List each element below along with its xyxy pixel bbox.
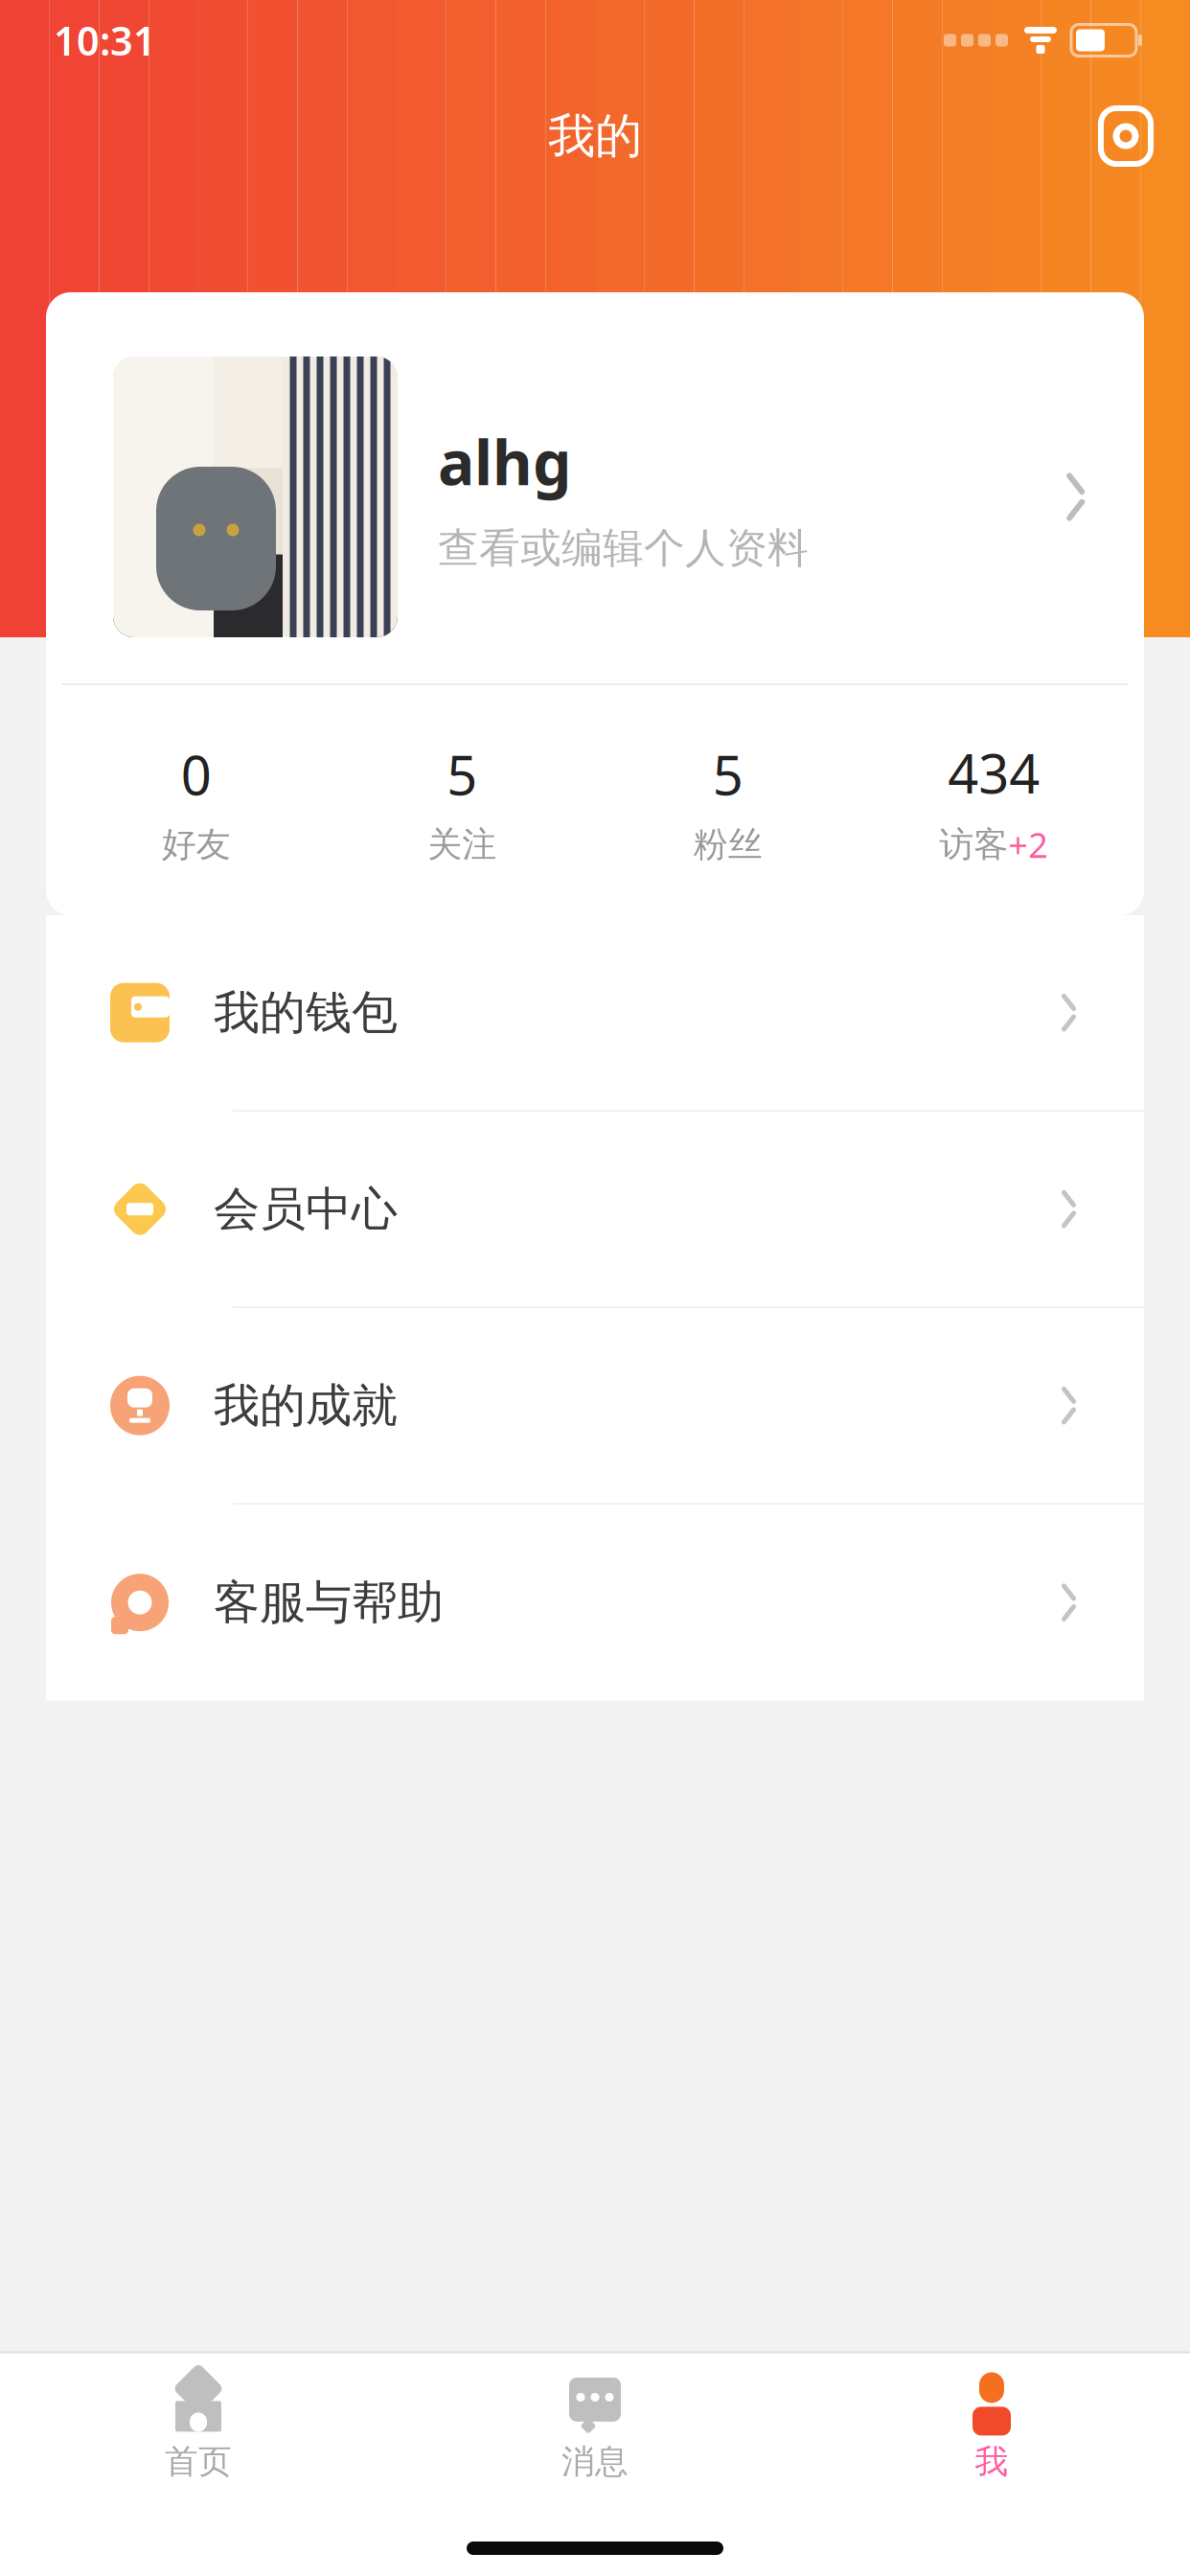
staticText: 首页 <box>165 2441 232 2482</box>
staticText: 消息 <box>561 2441 629 2482</box>
staticText: 10:31 <box>54 14 156 67</box>
button[interactable]: 消息 <box>397 2359 793 2499</box>
staticText: 5 <box>713 739 743 810</box>
button[interactable]: 我的成就 <box>46 1308 1144 1505</box>
staticText: 会员中心 <box>214 1181 398 1237</box>
button[interactable]: alhg <box>46 292 1144 683</box>
staticText: 我的 <box>548 107 642 165</box>
staticText: 查看或编辑个人资料 <box>438 523 809 573</box>
staticText: alhg <box>438 421 571 502</box>
staticText: 关注 <box>428 823 497 866</box>
button[interactable]: 5 <box>595 729 861 875</box>
button[interactable]: 会员中心 <box>46 1112 1144 1308</box>
staticText: 访客 <box>939 823 1008 866</box>
staticText: 客服与帮助 <box>214 1574 444 1631</box>
button[interactable]: 我的钱包 <box>46 915 1144 1112</box>
staticText: 粉丝 <box>693 823 762 866</box>
button[interactable]: 434 <box>861 727 1127 877</box>
button[interactable]: 0 <box>63 729 329 875</box>
button[interactable]: 首页 <box>0 2359 397 2499</box>
button[interactable]: 设置 <box>1083 93 1169 179</box>
staticText: 我的成就 <box>214 1377 398 1434</box>
button[interactable]: 我 <box>793 2359 1190 2499</box>
staticText: 434 <box>948 737 1040 808</box>
button[interactable]: 客服与帮助 <box>46 1505 1144 1700</box>
staticText: 我 <box>975 2441 1008 2482</box>
staticText: 好友 <box>162 823 231 866</box>
staticText: +2 <box>1008 822 1048 867</box>
staticText: 5 <box>447 739 477 810</box>
button[interactable]: 5 <box>329 729 595 875</box>
staticText: 我的钱包 <box>214 984 398 1041</box>
staticText: 0 <box>181 739 212 810</box>
